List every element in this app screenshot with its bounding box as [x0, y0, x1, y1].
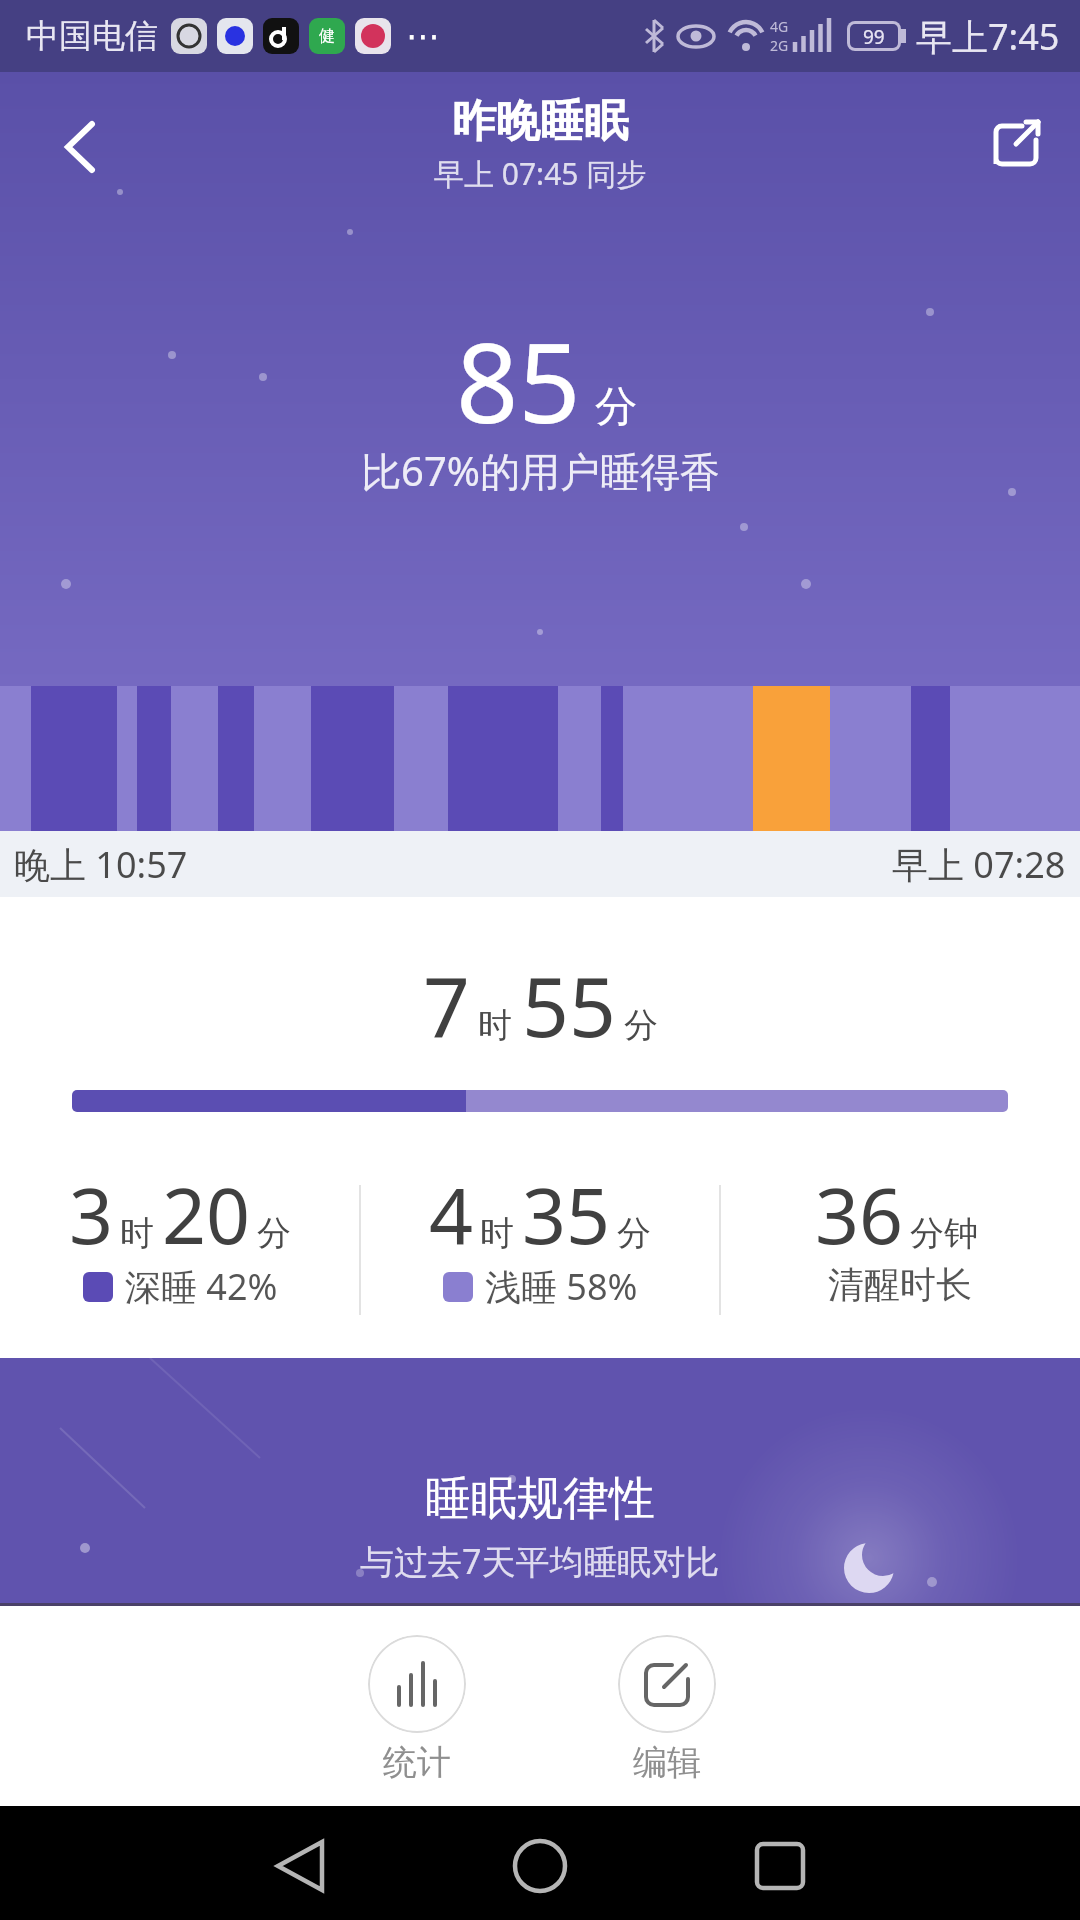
staticText: 7: [423, 949, 470, 1061]
staticText: 早上 07:28: [892, 840, 1066, 889]
staticText: 中国电信: [26, 15, 158, 57]
staticText: 20: [162, 1162, 251, 1267]
staticText: 比67%的用户睡得香: [361, 443, 720, 498]
staticText: 分: [595, 381, 637, 434]
button[interactable]: 编辑: [597, 1635, 737, 1784]
staticText: 清醒时长: [828, 1262, 972, 1307]
staticText: 分钟: [910, 1212, 978, 1255]
staticText: 4: [429, 1162, 474, 1267]
staticText: ⋯: [406, 16, 440, 56]
staticText: 2G: [770, 36, 789, 55]
staticText: 时: [120, 1212, 154, 1255]
staticText: 35: [522, 1162, 611, 1267]
staticText: 分: [257, 1212, 291, 1255]
staticText: 分: [617, 1212, 651, 1255]
staticText: 健: [319, 26, 335, 46]
staticText: 3: [69, 1162, 114, 1267]
button[interactable]: 睡眠规律性: [0, 1358, 1080, 1606]
staticText: 编辑: [633, 1741, 701, 1784]
staticText: 36: [815, 1162, 904, 1267]
staticText: 99: [863, 24, 885, 48]
staticText: 昨晚睡眠: [452, 94, 628, 149]
staticText: 分: [624, 1004, 658, 1047]
staticText: 早上7:45: [916, 12, 1060, 61]
staticText: 55: [522, 949, 616, 1061]
staticText: 早上 07:45 同步: [434, 153, 647, 194]
staticText: 统计: [383, 1741, 451, 1784]
button[interactable]: [495, 1822, 585, 1912]
staticText: 85: [456, 306, 581, 454]
button[interactable]: [258, 1822, 348, 1912]
staticText: 4G: [770, 17, 789, 36]
staticText: 与过去7天平均睡眠对比: [360, 1538, 720, 1584]
staticText: 睡眠规律性: [425, 1470, 655, 1528]
staticText: 晚上 10:57: [14, 840, 188, 889]
button[interactable]: [988, 116, 1052, 180]
button[interactable]: 统计: [347, 1635, 487, 1784]
staticText: 时: [478, 1004, 512, 1047]
staticText: 浅睡 58%: [485, 1262, 638, 1311]
button[interactable]: [48, 114, 112, 178]
button[interactable]: [735, 1822, 825, 1912]
staticText: 深睡 42%: [125, 1262, 278, 1311]
staticText: 时: [480, 1212, 514, 1255]
